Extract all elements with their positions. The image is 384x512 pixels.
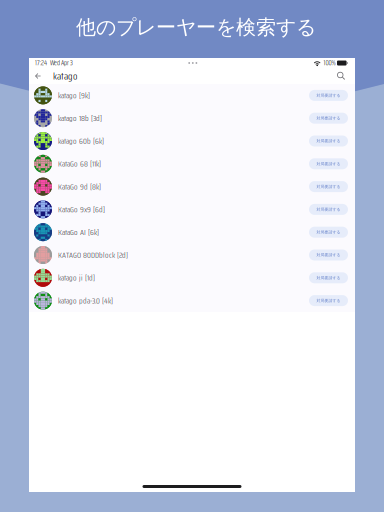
staticText: 対局要請する — [316, 207, 340, 212]
button[interactable]: 対局要請する — [309, 158, 348, 169]
staticText: katago ji [1d] — [58, 271, 95, 284]
button[interactable]: KATAGO 80DDblock [2d] — [29, 244, 355, 266]
staticText: 17:24 Wed Apr 3 — [35, 58, 73, 68]
staticText: 対局要請する — [316, 93, 340, 98]
button[interactable]: katago [9k] — [29, 84, 355, 107]
staticText: KataGo AI [6k] — [58, 226, 99, 238]
staticText: KataGo 9d [8k] — [58, 180, 101, 193]
staticText: katago 60b [6k] — [58, 135, 104, 147]
staticText: KataGo 9x9 [6d] — [58, 203, 105, 216]
button[interactable]: 対局要請する — [309, 135, 348, 146]
button[interactable]: 対局要請する — [309, 113, 348, 124]
staticText: 対局要請する — [316, 252, 340, 257]
staticText: 対局要請する — [316, 230, 340, 235]
staticText: 対局要請する — [316, 275, 340, 280]
staticText: katago pda-3.0 [4k] — [58, 294, 113, 307]
staticText: 対局要請する — [316, 298, 340, 303]
button[interactable]: katago pda-3.0 [4k] — [29, 289, 355, 312]
button[interactable]: KataGo 68 [11k] — [29, 152, 355, 175]
button[interactable]: katago 60b [6k] — [29, 130, 355, 152]
staticText: katago — [53, 68, 77, 84]
button[interactable]: 対局要請する — [309, 181, 348, 192]
staticText: 他のプレーヤーを検索する — [76, 15, 316, 40]
staticText: 対局要請する — [316, 161, 340, 166]
staticText: katago [9k] — [58, 89, 90, 102]
staticText: KataGo 68 [11k] — [58, 157, 101, 170]
button[interactable]: katago 18b [3d] — [29, 107, 355, 130]
button[interactable]: Search — [336, 71, 346, 81]
button[interactable]: Back — [35, 71, 41, 81]
button[interactable]: 対局要請する — [309, 272, 348, 283]
staticText: 対局要請する — [316, 184, 340, 189]
staticText: 100% — [323, 58, 335, 68]
button[interactable]: 対局要請する — [309, 204, 348, 215]
button[interactable]: katago ji [1d] — [29, 266, 355, 289]
staticText: 対局要請する — [316, 138, 340, 143]
button[interactable]: KataGo 9x9 [6d] — [29, 198, 355, 221]
button[interactable]: 対局要請する — [309, 249, 348, 260]
staticText: KATAGO 80DDblock [2d] — [58, 249, 128, 261]
button[interactable]: KataGo 9d [8k] — [29, 175, 355, 198]
button[interactable]: KataGo AI [6k] — [29, 221, 355, 244]
button[interactable]: 対局要請する — [309, 90, 348, 101]
button[interactable]: 対局要請する — [309, 227, 348, 238]
staticText: 対局要請する — [316, 116, 340, 121]
staticText: katago 18b [3d] — [58, 112, 102, 124]
button[interactable]: 対局要請する — [309, 295, 348, 306]
